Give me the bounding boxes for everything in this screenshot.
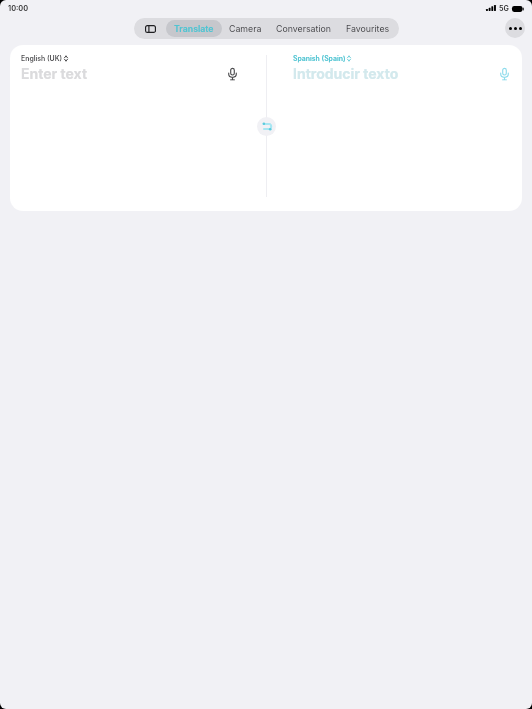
button[interactable]: More options <box>505 18 525 38</box>
button[interactable]: Microphone <box>495 65 513 83</box>
staticText: Conversation <box>276 23 332 34</box>
button[interactable]: Favourites <box>339 20 397 37</box>
button[interactable]: Sidebar <box>134 18 166 39</box>
staticText: Enter text <box>21 65 88 82</box>
button[interactable]: Conversation <box>269 20 339 37</box>
staticText: Favourites <box>346 23 390 34</box>
button[interactable]: Swap languages <box>257 117 276 136</box>
staticText: 10:00 <box>8 4 29 13</box>
staticText: 5G <box>499 4 509 13</box>
staticText: Camera <box>229 23 262 34</box>
button[interactable]: Translate <box>166 20 222 37</box>
staticText: Translate <box>174 23 214 34</box>
staticText: Spanish (Spain) <box>293 54 346 62</box>
button[interactable]: Microphone <box>223 65 241 83</box>
button[interactable]: Camera <box>222 20 269 37</box>
staticText: Introducir texto <box>293 65 399 82</box>
staticText: English (UK) <box>21 54 63 62</box>
